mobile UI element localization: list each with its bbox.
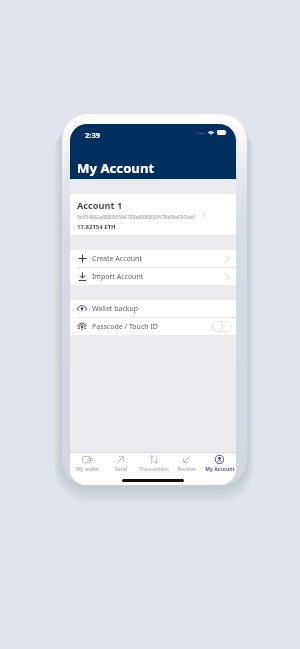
- staticText: 17.82154 ETH: [77, 223, 116, 231]
- staticText: Transactions: [139, 466, 169, 472]
- button[interactable]: Wallet backup: [70, 300, 236, 317]
- staticText: Create Account: [92, 254, 142, 264]
- staticText: Passcode / Touch ID: [92, 322, 158, 332]
- staticText: Wallet backup: [92, 304, 139, 314]
- button[interactable]: Send: [104, 453, 137, 472]
- button[interactable]: Passcode / Touch ID toggle: [212, 321, 232, 332]
- button[interactable]: My Account: [203, 453, 236, 472]
- button[interactable]: Passcode / Touch ID: [70, 318, 236, 335]
- staticText: My wallet: [76, 466, 99, 472]
- staticText: My Account: [77, 159, 155, 177]
- staticText: 2:39: [85, 130, 100, 140]
- staticText: My Account: [205, 466, 235, 472]
- staticText: Account 1: [77, 199, 123, 212]
- button[interactable]: Transactions: [137, 453, 170, 472]
- staticText: Receive: [178, 466, 196, 472]
- staticText: Import Account: [92, 272, 144, 282]
- staticText: Send: [115, 466, 127, 472]
- button[interactable]: Create Account: [70, 250, 236, 267]
- button[interactable]: My wallet: [70, 453, 104, 472]
- button[interactable]: Import Account: [70, 268, 236, 285]
- staticText: 0x554862e0EB!0E566708e8038E50A7Bdf8eF5Od…: [77, 214, 195, 221]
- button[interactable]: Receive: [170, 453, 203, 472]
- button[interactable]: Account 1: [70, 194, 236, 235]
